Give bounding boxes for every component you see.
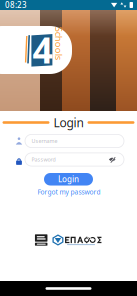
staticText: Forgot my password: [37, 188, 100, 196]
staticText: Schools: [42, 37, 75, 49]
button[interactable]: Login: [44, 173, 93, 185]
button[interactable]: Forgot my password: [34, 188, 104, 196]
staticText: Login: [58, 174, 79, 184]
staticText: 4: [32, 26, 53, 73]
staticText: 08:23: [5, 0, 27, 10]
staticText: Username: [31, 137, 57, 145]
staticText: Password: [31, 156, 55, 163]
staticText: Login: [53, 114, 83, 130]
